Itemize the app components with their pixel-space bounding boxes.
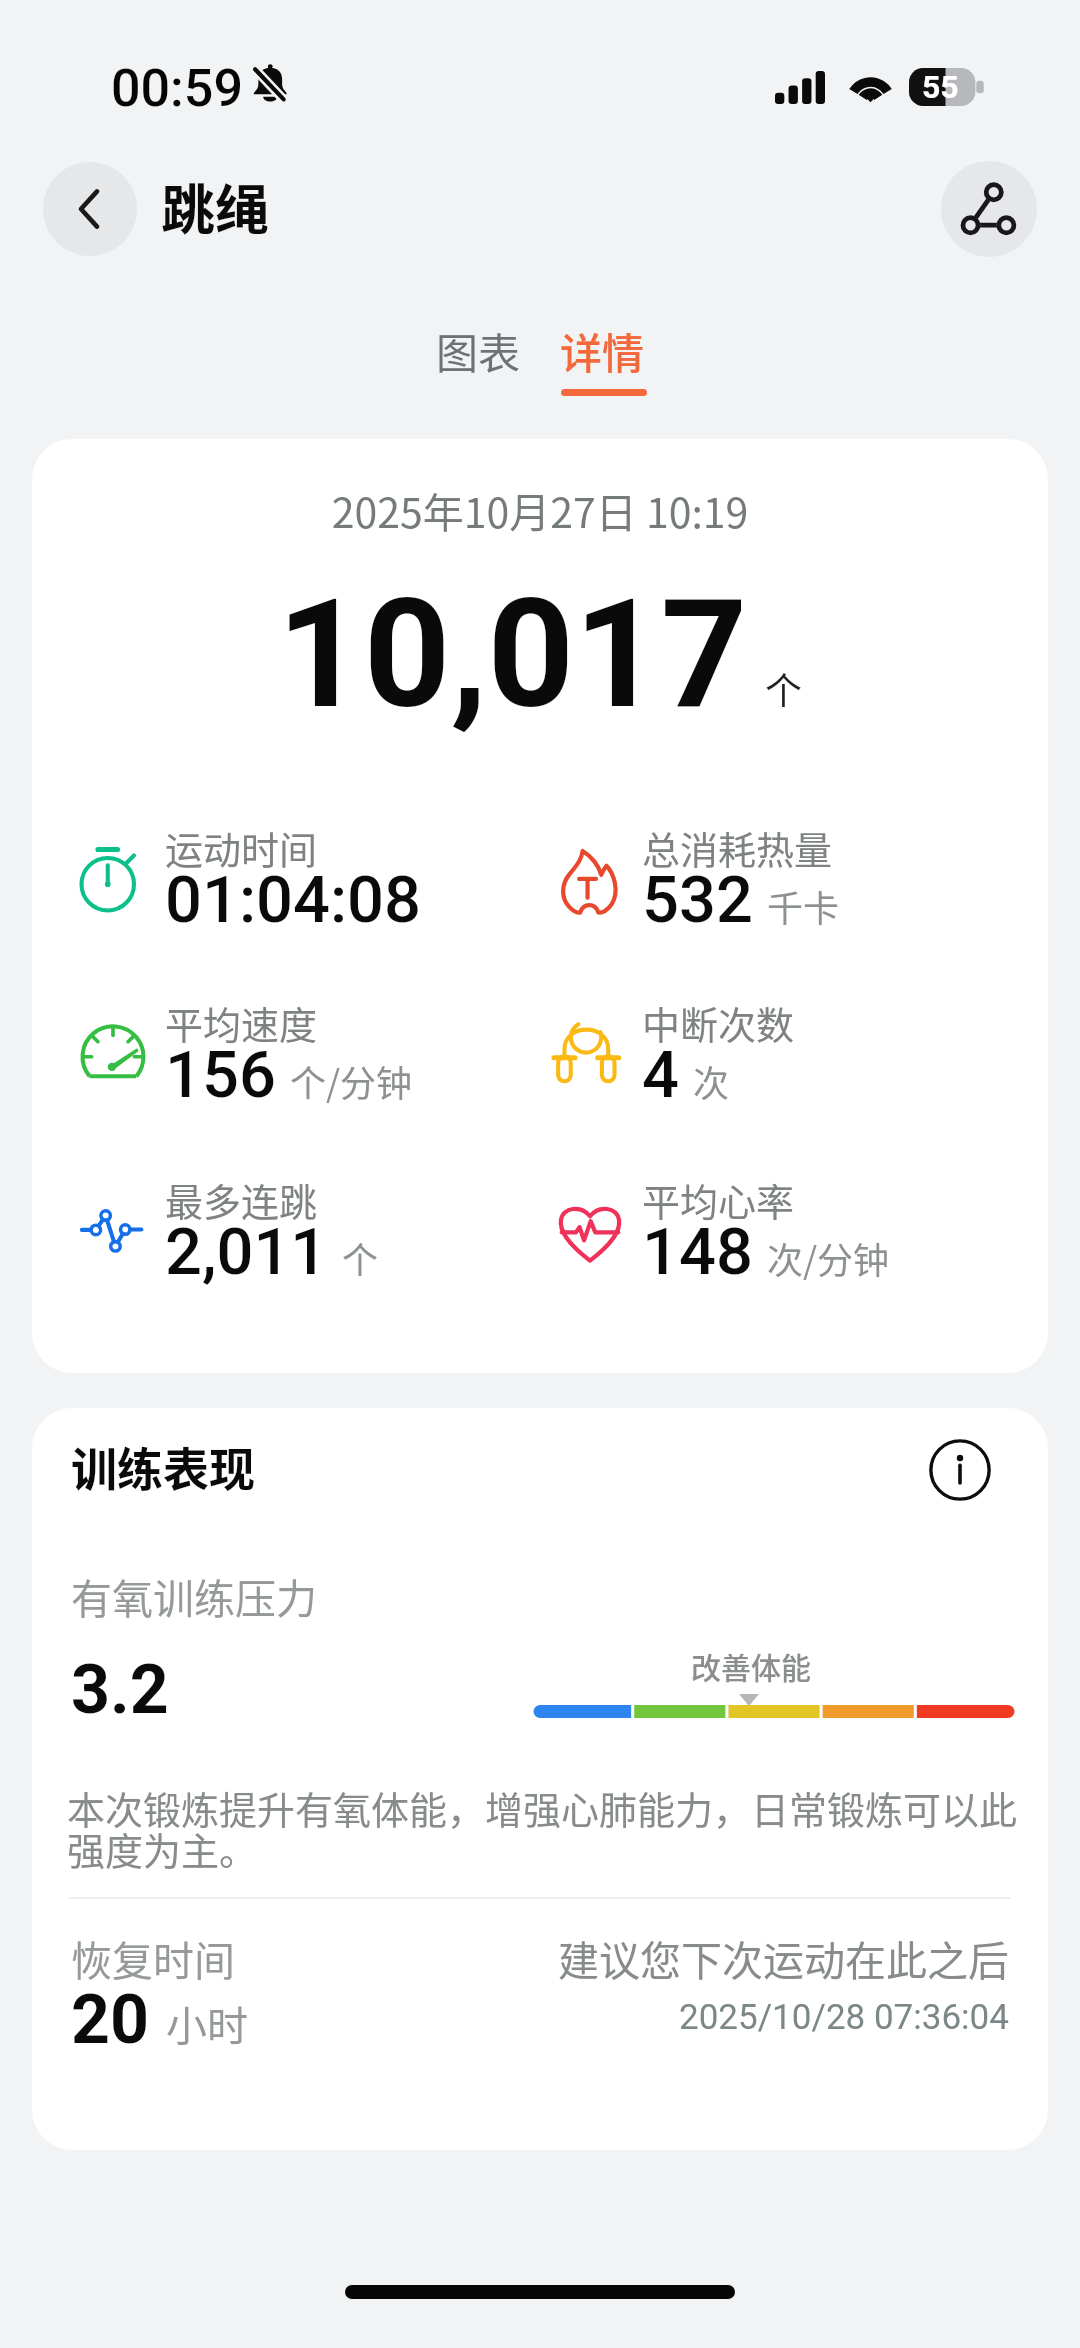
staticText: 有氧训练压力 — [71, 1566, 317, 1625]
staticText: 图表 — [436, 320, 521, 381]
staticText: 3.2 — [71, 1650, 169, 1730]
staticText: 最多连跳 — [165, 1172, 318, 1227]
staticText: 千卡 — [767, 880, 840, 932]
staticText: 156 — [165, 1037, 276, 1113]
staticText: 小时 — [166, 1993, 248, 2052]
staticText: 2025年10月27日 10:19 — [32, 480, 1048, 539]
staticText: 01:04:08 — [165, 862, 421, 938]
button[interactable]: Back — [43, 162, 137, 256]
staticText: 20 — [71, 1980, 150, 2060]
staticText: 个/分钟 — [290, 1055, 413, 1107]
staticText: 本次锻炼提升有氧体能，增强心肺能力，日常锻炼可以此强度为主。 — [67, 1780, 1027, 1876]
button[interactable]: Share — [941, 161, 1037, 257]
staticText: 建议您下次运动在此之后 — [558, 1928, 1009, 1987]
staticText: 平均心率 — [642, 1172, 795, 1227]
staticText: 2,011 — [165, 1214, 328, 1290]
staticText: 532 — [642, 862, 753, 938]
button[interactable]: Info — [924, 1434, 996, 1506]
staticText: 恢复时间 — [71, 1928, 235, 1987]
staticText: 改善体能 — [691, 1644, 811, 1687]
staticText: 总消耗热量 — [642, 820, 833, 875]
staticText: 运动时间 — [165, 820, 318, 875]
staticText: 4 — [642, 1037, 679, 1113]
staticText: 10,017 — [277, 566, 748, 743]
staticText: 训练表现 — [71, 1433, 255, 1500]
staticText: 详情 — [560, 320, 645, 381]
staticText: 148 — [642, 1214, 753, 1290]
staticText: 跳绳 — [161, 167, 269, 245]
staticText: 2025/10/28 07:36:04 — [679, 1997, 1009, 2038]
button[interactable]: 详情 — [540, 300, 665, 401]
staticText: 个 — [342, 1232, 379, 1284]
staticText: 00:59 — [111, 58, 243, 119]
staticText: 55 — [922, 68, 959, 105]
button[interactable]: 图表 — [416, 300, 541, 401]
staticText: 次/分钟 — [767, 1232, 890, 1284]
staticText: 次 — [693, 1055, 730, 1107]
staticText: 平均速度 — [165, 995, 318, 1050]
staticText: 个 — [765, 662, 802, 716]
staticText: 中断次数 — [642, 995, 795, 1050]
